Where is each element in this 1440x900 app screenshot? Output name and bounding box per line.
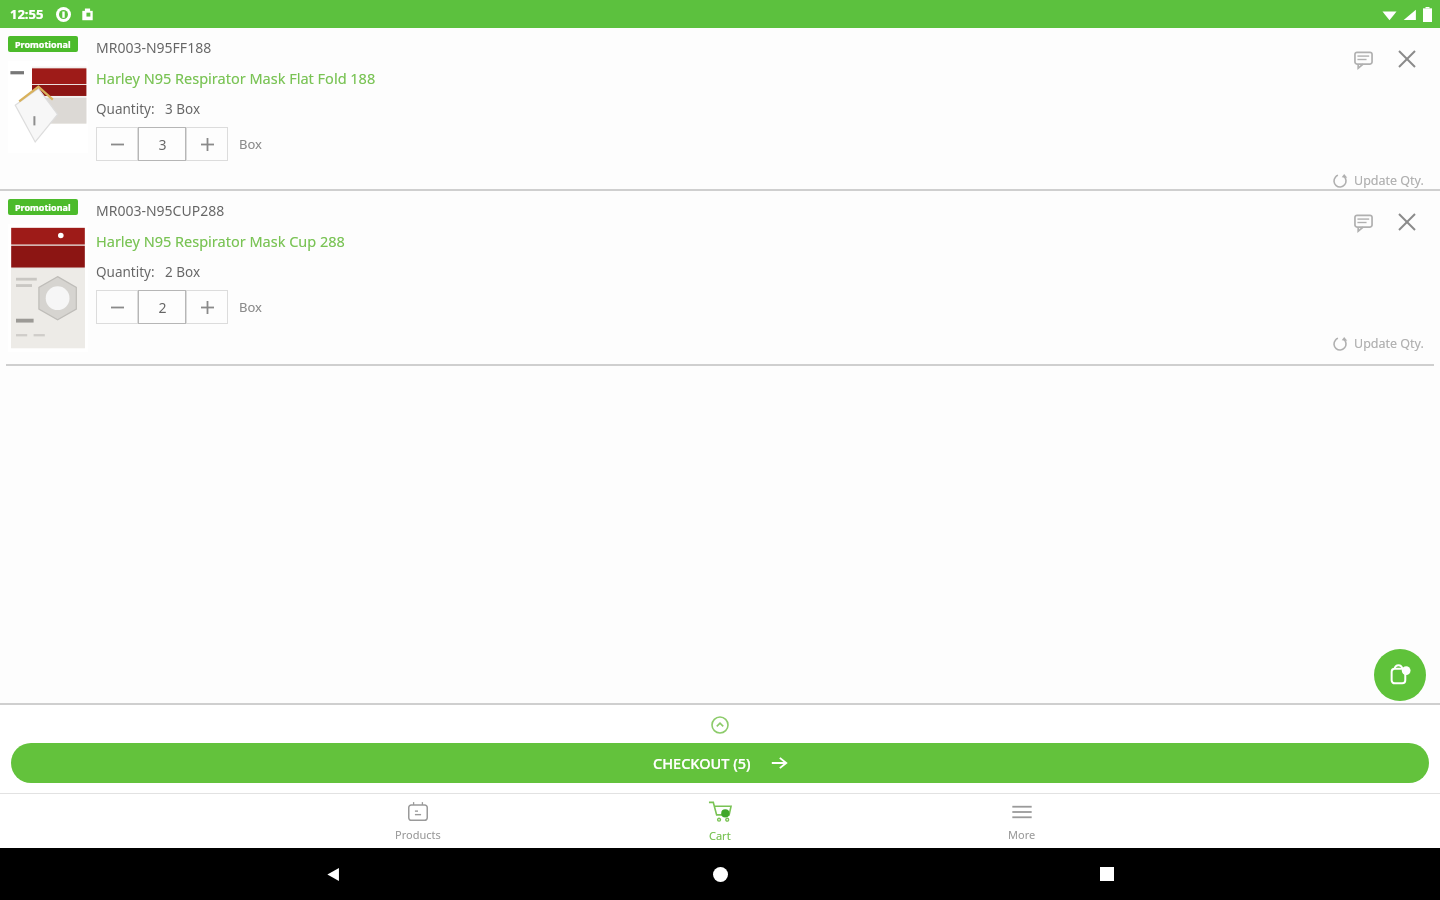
staticText: CHECKOUT (5): [653, 753, 751, 773]
button[interactable]: Update Qty.: [1333, 172, 1424, 189]
staticText: Cart: [709, 828, 731, 843]
button[interactable]: Recent apps: [1083, 850, 1131, 898]
button[interactable]: 3: [138, 127, 186, 161]
button[interactable]: Decrease quantity: [96, 127, 138, 161]
button[interactable]: Increase quantity: [186, 127, 228, 161]
button[interactable]: Increase quantity: [186, 290, 228, 324]
button[interactable]: [8, 61, 88, 153]
staticText: 3: [158, 135, 167, 154]
staticText: Quantity:: [96, 100, 155, 118]
staticText: 2: [158, 298, 167, 317]
button[interactable]: Remove item: [1390, 42, 1424, 76]
button[interactable]: Add to cart: [1374, 649, 1426, 701]
button[interactable]: Add note: [1346, 42, 1380, 76]
button[interactable]: Cart: [674, 794, 766, 848]
button[interactable]: Harley N95 Respirator Mask Flat Fold 188: [96, 68, 376, 88]
button[interactable]: Home: [696, 850, 744, 898]
staticText: 2 Box: [165, 263, 201, 281]
button[interactable]: Decrease quantity: [96, 290, 138, 324]
staticText: More: [1008, 827, 1036, 842]
staticText: Promotional: [15, 38, 71, 50]
staticText: MR003-N95CUP288: [96, 201, 225, 220]
button[interactable]: Add note: [1346, 205, 1380, 239]
staticText: Box: [239, 298, 262, 316]
button[interactable]: Products: [372, 794, 464, 848]
button[interactable]: Update Qty.: [1333, 335, 1424, 352]
button[interactable]: CHECKOUT (5): [11, 743, 1429, 783]
staticText: Box: [239, 135, 262, 153]
button[interactable]: Harley N95 Respirator Mask Cup 288: [96, 231, 345, 251]
staticText: Products: [395, 827, 441, 842]
button[interactable]: Expand summary: [0, 714, 1440, 736]
staticText: MR003-N95FF188: [96, 38, 212, 57]
button[interactable]: More: [976, 794, 1068, 848]
staticText: Update Qty.: [1354, 172, 1424, 189]
button[interactable]: Remove item: [1390, 205, 1424, 239]
staticText: Quantity:: [96, 263, 155, 281]
staticText: 3 Box: [165, 100, 201, 118]
staticText: Promotional: [15, 201, 71, 213]
button[interactable]: [8, 224, 88, 352]
button[interactable]: Promotional: [8, 36, 78, 52]
button[interactable]: 2: [138, 290, 186, 324]
button[interactable]: Promotional: [8, 199, 78, 215]
staticText: Update Qty.: [1354, 335, 1424, 352]
staticText: 12:55: [10, 5, 44, 23]
button[interactable]: Back: [309, 850, 357, 898]
